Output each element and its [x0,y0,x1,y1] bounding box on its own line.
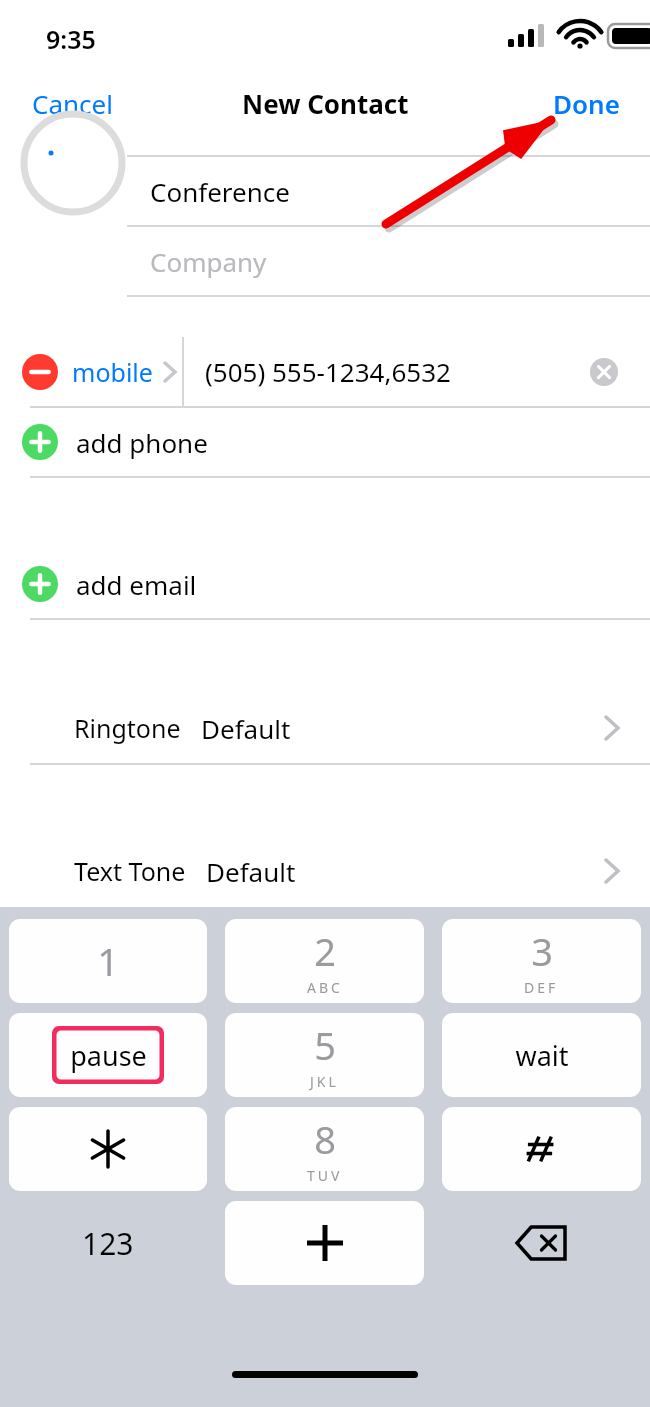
staticText: Text Tone [74,854,186,888]
button[interactable] [9,1107,207,1191]
button[interactable] [442,1107,641,1191]
button[interactable]: add email [0,550,650,618]
staticText: Default [206,854,296,889]
staticText: Company [150,244,267,279]
staticText: pause [70,1037,147,1074]
button[interactable]: pause [9,1013,207,1097]
staticText: add phone [76,425,208,460]
staticText: TUV [307,1166,343,1185]
button[interactable]: Cancel [0,80,125,127]
button[interactable]: Remove phone [22,354,58,390]
button[interactable]: Text Tone [0,838,650,904]
button[interactable]: 8 [225,1107,424,1191]
button[interactable]: Ringtone [0,693,650,763]
staticText: add email [76,567,197,602]
staticText: New Contact [242,86,409,121]
button[interactable]: mobile [72,355,177,389]
staticText: 8 [314,1113,336,1165]
button[interactable]: 123 [0,1201,216,1285]
staticText: 1 [97,935,119,987]
button[interactable]: Conference [0,157,650,225]
staticText: 123 [82,1223,134,1264]
button[interactable]: 3 [442,919,641,1003]
button[interactable]: wait [442,1013,641,1097]
button[interactable]: Done [541,80,650,127]
staticText: DEF [524,978,559,997]
staticText: Default [201,711,291,746]
staticText: ABC [307,978,343,997]
staticText: 9:35 [46,22,96,56]
staticText: 2 [314,925,336,977]
staticText: mobile [72,355,153,389]
button[interactable]: Clear text [590,358,618,386]
button[interactable]: 1 [9,919,207,1003]
button[interactable]: Delete [433,1201,650,1285]
staticText: Ringtone [74,711,181,745]
button[interactable]: 5 [225,1013,424,1097]
staticText: (505) 555-1234,6532 [205,354,451,389]
staticText: wait [515,1037,569,1074]
button[interactable]: Plus [225,1201,424,1285]
staticText: 5 [314,1019,336,1071]
staticText: JKL [310,1072,339,1091]
button[interactable]: 2 [225,919,424,1003]
button[interactable]: add phone [0,408,650,476]
button[interactable]: Company [0,227,650,295]
staticText: 3 [531,925,553,977]
staticText: Conference [150,174,290,209]
